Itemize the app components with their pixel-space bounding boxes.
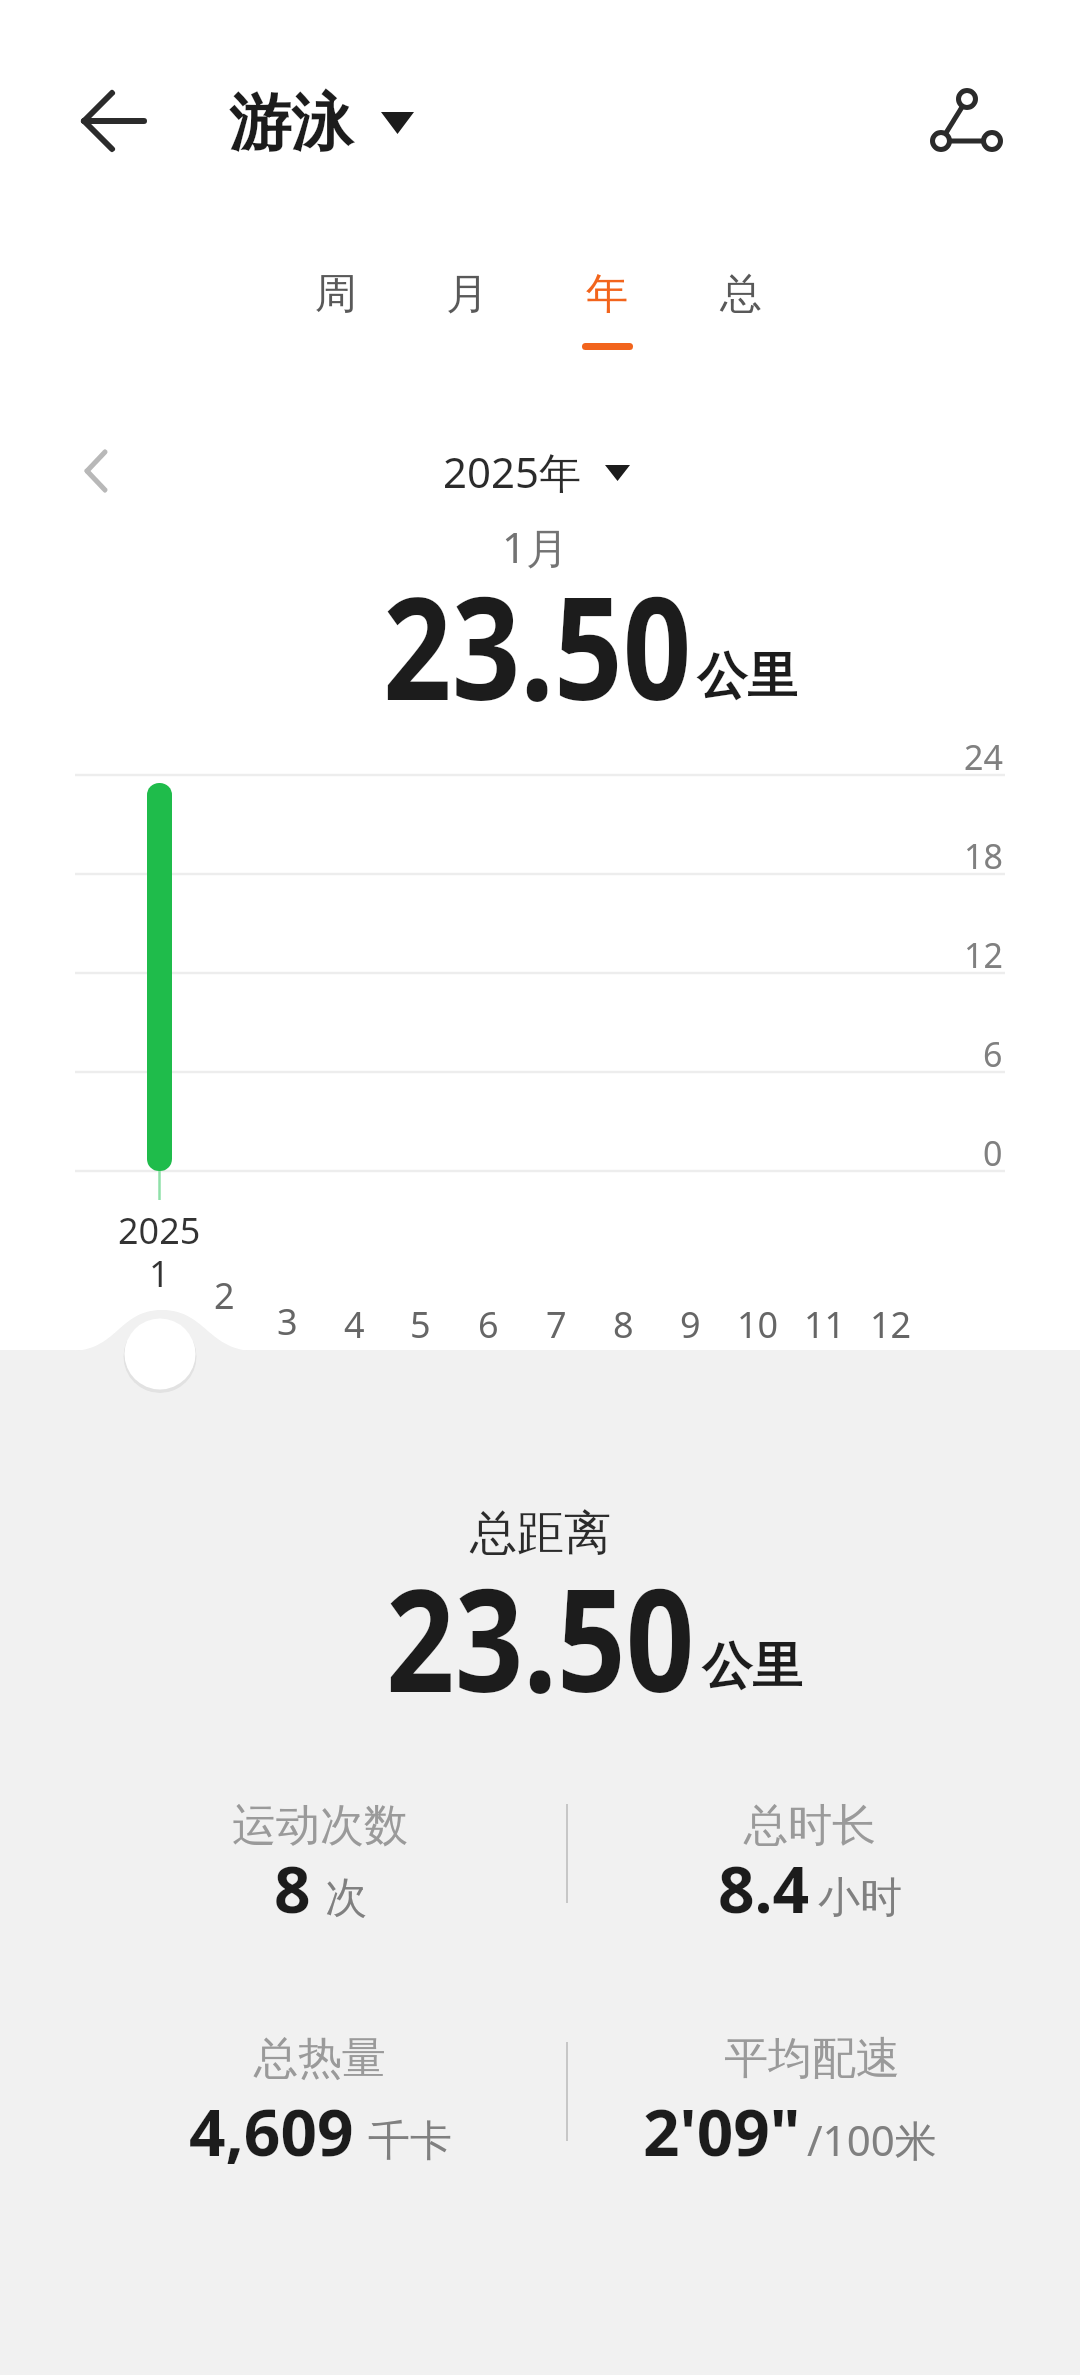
staticText: 3 xyxy=(277,1297,298,1346)
staticText: 1 xyxy=(149,1249,170,1298)
staticText: 8 xyxy=(613,1300,634,1349)
staticText: 18 xyxy=(964,833,1003,879)
staticText: 4 xyxy=(344,1300,365,1349)
button[interactable]: 8.4 xyxy=(510,1818,1080,1958)
staticText: 总距离 xyxy=(470,1504,611,1563)
staticText: 2025年 xyxy=(443,443,582,500)
button[interactable]: 周 xyxy=(36,214,636,374)
staticText: 游泳 xyxy=(229,84,353,162)
staticText: 6 xyxy=(983,1031,1003,1077)
staticText: 次 xyxy=(325,1872,367,1925)
staticText: 公里 xyxy=(697,645,797,708)
staticText: 9 xyxy=(680,1300,701,1349)
staticText: 公里 xyxy=(702,1635,802,1698)
button[interactable]: 2'09" xyxy=(490,2061,1080,2201)
staticText: 2 xyxy=(214,1271,235,1320)
staticText: 11 xyxy=(804,1300,846,1349)
button[interactable]: 2025年 xyxy=(212,391,812,551)
staticText: 10 xyxy=(737,1300,779,1349)
staticText: 月 xyxy=(446,268,488,321)
button[interactable]: 年 xyxy=(307,214,907,374)
staticText: 2025 xyxy=(118,1206,201,1255)
staticText: 平均配速 xyxy=(724,2031,900,2086)
staticText: 12 xyxy=(870,1300,912,1349)
staticText: 24 xyxy=(964,734,1003,780)
staticText: 0 xyxy=(983,1130,1003,1176)
staticText: 5 xyxy=(410,1300,431,1349)
staticText: 周 xyxy=(315,268,357,321)
staticText: 6 xyxy=(478,1300,499,1349)
staticText: 12 xyxy=(964,932,1003,978)
staticText: 总时长 xyxy=(744,1798,876,1853)
staticText: 8 xyxy=(274,1845,311,1932)
staticText: 7 xyxy=(546,1300,567,1349)
staticText: 小时 xyxy=(818,1872,902,1925)
button[interactable]: 4,609 xyxy=(20,2061,620,2201)
button[interactable]: 游泳 xyxy=(0,43,591,203)
staticText: 23.50 xyxy=(386,1541,695,1729)
staticText: 23.50 xyxy=(383,549,692,737)
button[interactable]: 8 xyxy=(20,1818,620,1958)
staticText: 总 xyxy=(720,268,762,321)
staticText: 4,609 xyxy=(189,2088,354,2175)
staticText: 8.4 xyxy=(718,1845,810,1932)
button[interactable]: 月 xyxy=(167,214,767,374)
staticText: 年 xyxy=(586,268,628,321)
staticText: 1月 xyxy=(502,518,569,575)
staticText: /100米 xyxy=(807,2111,937,2168)
staticText: 运动次数 xyxy=(232,1798,408,1853)
staticText: 总热量 xyxy=(254,2031,386,2086)
staticText: 千卡 xyxy=(368,2115,452,2168)
staticText: 2'09" xyxy=(643,2088,801,2175)
button[interactable]: 总 xyxy=(441,214,1041,374)
